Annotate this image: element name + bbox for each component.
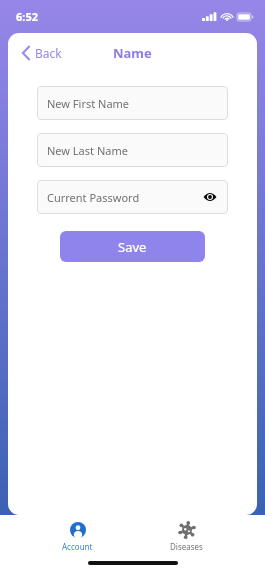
staticText: Save [118,238,147,256]
staticText: 6:52 [16,9,38,24]
staticText: Account [62,541,93,552]
button[interactable]: Save [60,231,205,262]
button[interactable]: Current Password [37,180,228,214]
button[interactable]: Show password [202,189,218,205]
staticText: Name [113,44,152,62]
button[interactable]: Account [46,520,109,554]
button[interactable]: Diseases [154,520,219,554]
staticText: New Last Name [47,143,128,158]
button[interactable]: New First Name [37,86,228,120]
staticText: Back [35,45,62,61]
staticText: Current Password [47,190,140,205]
button[interactable]: New Last Name [37,133,228,167]
button[interactable]: Back [18,41,66,65]
staticText: Diseases [170,541,203,552]
staticText: New First Name [47,96,130,111]
